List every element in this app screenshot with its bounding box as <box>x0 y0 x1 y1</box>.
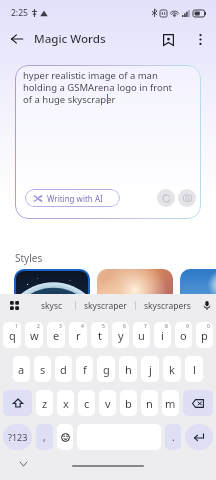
button[interactable]: k <box>163 356 181 382</box>
staticText: q <box>9 328 16 343</box>
staticText: s <box>40 362 46 377</box>
staticText: m <box>165 396 176 411</box>
staticText: 7 <box>144 323 147 330</box>
button[interactable]: skyscrapers <box>136 294 198 317</box>
button[interactable]: f <box>76 356 93 382</box>
staticText: 2 <box>37 323 40 330</box>
staticText: h <box>125 362 132 377</box>
staticText: 0 <box>207 323 210 330</box>
button[interactable]: x <box>57 390 74 416</box>
button[interactable]: Style 2 <box>97 269 173 321</box>
staticText: hyper realistic image of a man holding a… <box>23 69 173 106</box>
staticText: Magic Words <box>34 31 106 47</box>
staticText: Styles <box>15 251 43 265</box>
staticText: e <box>53 328 60 343</box>
button[interactable]: Shift <box>3 390 32 416</box>
button[interactable]: y <box>112 322 129 348</box>
staticText: 5 <box>102 323 105 330</box>
button[interactable]: Comma <box>36 424 53 450</box>
button[interactable]: z <box>36 390 53 416</box>
staticText: n <box>146 396 153 411</box>
staticText: b <box>125 396 132 411</box>
staticText: y <box>118 328 124 343</box>
button[interactable]: n <box>141 390 158 416</box>
staticText: i <box>161 328 164 343</box>
staticText: r <box>76 328 81 343</box>
button[interactable]: q <box>3 322 21 348</box>
button[interactable]: Symbols <box>3 424 32 450</box>
button[interactable]: a <box>13 356 30 382</box>
staticText: 6 <box>123 323 126 330</box>
staticText: g <box>103 362 110 377</box>
button[interactable]: t <box>91 322 108 348</box>
button[interactable]: Camera <box>178 189 196 207</box>
button[interactable]: Enter <box>185 424 213 450</box>
button[interactable]: skysc <box>28 294 75 317</box>
button[interactable]: o <box>175 322 192 348</box>
staticText: o <box>180 328 187 343</box>
staticText: x <box>63 396 69 411</box>
staticText: f <box>83 362 87 377</box>
staticText: k <box>169 362 175 377</box>
button[interactable]: w <box>25 322 43 348</box>
button[interactable]: Voice input <box>198 294 216 317</box>
button[interactable]: l <box>185 356 203 382</box>
staticText: v <box>105 396 111 411</box>
button[interactable]: p <box>196 322 213 348</box>
button[interactable]: Keyboard menu <box>0 294 28 317</box>
button[interactable]: e <box>47 322 65 348</box>
button[interactable]: v <box>99 390 116 416</box>
staticText: 3 <box>59 323 62 330</box>
staticText: d <box>60 362 67 377</box>
staticText: 8 <box>165 323 168 330</box>
button[interactable]: Style 3 <box>180 269 216 321</box>
staticText: 4 <box>81 323 84 330</box>
staticText: 2:25 <box>11 7 28 19</box>
button[interactable]: g <box>97 356 115 382</box>
staticText: l <box>193 362 196 377</box>
button[interactable]: s <box>34 356 51 382</box>
staticText: . <box>172 430 175 444</box>
staticText: w <box>30 328 39 343</box>
button[interactable]: m <box>162 390 179 416</box>
button[interactable]: d <box>55 356 72 382</box>
staticText: , <box>43 430 46 444</box>
button[interactable]: Writing with AI <box>25 189 120 207</box>
staticText: 1 <box>15 323 18 330</box>
staticText: skyscraper <box>84 300 127 312</box>
button[interactable]: j <box>141 356 159 382</box>
staticText: skysc <box>41 300 63 312</box>
button[interactable]: b <box>120 390 137 416</box>
staticText: z <box>42 396 48 411</box>
button[interactable]: Period <box>165 424 181 450</box>
button[interactable]: Back <box>6 28 28 50</box>
staticText: Writing with AI <box>47 193 103 204</box>
button[interactable]: i <box>154 322 171 348</box>
button[interactable]: Undo <box>157 189 175 207</box>
staticText: skyscrapers <box>144 300 191 312</box>
button[interactable]: Style 1 <box>14 269 90 321</box>
staticText: u <box>138 328 145 343</box>
button[interactable] <box>57 424 73 450</box>
staticText: j <box>149 362 152 377</box>
staticText: p <box>201 328 208 343</box>
button[interactable]: skyscraper <box>76 294 135 317</box>
button[interactable]: c <box>78 390 95 416</box>
staticText: t <box>98 328 102 343</box>
button[interactable]: Bookmark <box>158 29 179 50</box>
button[interactable]: u <box>133 322 150 348</box>
button[interactable]: Hide keyboard <box>16 457 30 471</box>
staticText: 9 <box>186 323 189 330</box>
button[interactable]: Backspace <box>183 390 213 416</box>
button[interactable]: h <box>119 356 137 382</box>
button[interactable]: r <box>69 322 87 348</box>
staticText: a <box>18 362 25 377</box>
staticText: ?123 <box>8 431 28 443</box>
button[interactable]: More options <box>190 29 211 50</box>
staticText: c <box>84 396 90 411</box>
